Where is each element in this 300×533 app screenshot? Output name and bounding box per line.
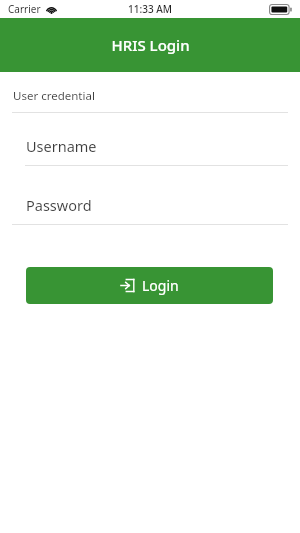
button[interactable]: Login (26, 267, 273, 304)
staticText: Password (26, 195, 92, 215)
staticText: Username (26, 136, 97, 156)
staticText: Login (142, 276, 179, 295)
button[interactable]: Password (0, 195, 300, 225)
other: Login (120, 278, 135, 293)
staticText: Carrier (8, 2, 41, 16)
staticText: 11:33 AM (128, 2, 172, 16)
button[interactable]: Username (0, 136, 300, 166)
staticText: User credential (13, 88, 95, 104)
staticText: HRIS Login (111, 35, 190, 55)
